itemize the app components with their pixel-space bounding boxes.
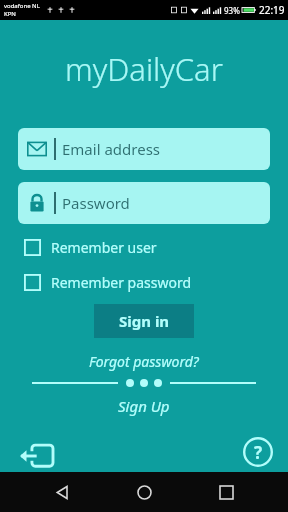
staticText: Email address	[62, 139, 161, 159]
button[interactable]: Remember user	[24, 234, 157, 260]
button[interactable]: Help	[238, 432, 278, 472]
staticText: 93%	[224, 5, 240, 16]
staticText: ?	[254, 441, 263, 464]
staticText: Password	[62, 193, 130, 213]
staticText: Sign in	[119, 311, 170, 331]
staticText: KPN	[4, 10, 16, 18]
staticText: vodafone NL	[4, 2, 40, 10]
staticText: Sign Up	[118, 396, 170, 416]
button[interactable]: Exit	[14, 434, 58, 478]
button[interactable]: Remember password	[24, 269, 192, 295]
staticText: 22:19	[259, 3, 285, 17]
button[interactable]: Email address	[18, 128, 270, 170]
button[interactable]: Sign Up	[0, 396, 288, 416]
staticText: Remember password	[51, 273, 192, 292]
staticText: Forgot password?	[89, 352, 199, 371]
button[interactable]: Recents	[206, 472, 246, 512]
staticText: Remember user	[51, 238, 157, 257]
button[interactable]: Forgot password?	[0, 352, 288, 371]
button[interactable]: Back	[42, 472, 82, 512]
button[interactable]: Sign in	[94, 304, 194, 338]
button[interactable]: Password	[18, 182, 270, 224]
staticText: myDailyCar	[65, 48, 223, 90]
button[interactable]: Home	[124, 472, 164, 512]
